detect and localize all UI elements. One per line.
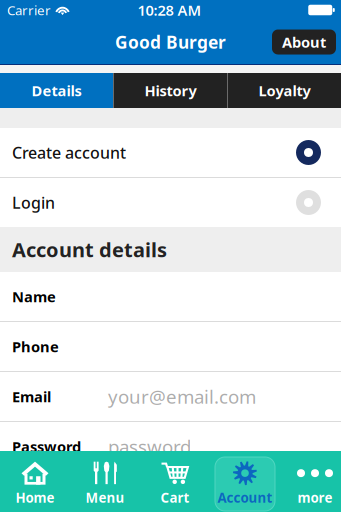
staticText: password [108, 434, 191, 459]
button[interactable]: Cart [145, 457, 205, 511]
staticText: 10:28 AM [137, 0, 201, 20]
button[interactable]: Menu [75, 457, 135, 511]
button[interactable]: Details [0, 73, 113, 108]
staticText: Loyalty [258, 81, 310, 100]
staticText: History [144, 81, 196, 100]
staticText: Home [15, 489, 54, 506]
staticText: Account [217, 489, 272, 506]
button[interactable]: Home [5, 457, 65, 511]
staticText: About [282, 32, 326, 52]
staticText: Create account [12, 142, 126, 163]
staticText: your@email.com [108, 384, 256, 409]
staticText: Cart [160, 489, 189, 506]
button[interactable]: About [272, 29, 336, 54]
staticText: Carrier [7, 1, 51, 19]
staticText: Login [12, 192, 55, 213]
staticText: Account details [12, 236, 167, 263]
staticText: Password [12, 437, 81, 456]
staticText: Email [12, 387, 51, 406]
staticText: Menu [85, 489, 124, 506]
staticText: Good Burger [115, 30, 226, 53]
staticText: Phone [12, 337, 59, 356]
button[interactable]: more [285, 457, 341, 511]
button[interactable]: Create account [0, 128, 341, 177]
button[interactable]: Login [0, 178, 341, 227]
button[interactable]: Loyalty [228, 73, 341, 108]
staticText: Name [12, 287, 56, 306]
staticText: Details [31, 81, 81, 100]
button[interactable]: History [114, 73, 227, 108]
button[interactable]: Account [215, 457, 275, 511]
staticText: more [297, 489, 332, 506]
